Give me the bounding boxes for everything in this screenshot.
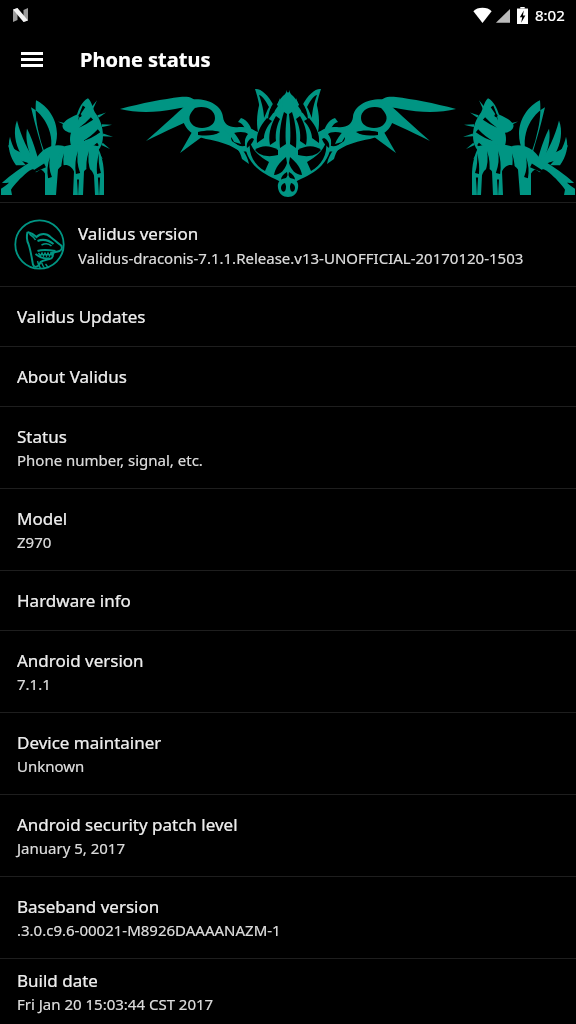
staticText: About Validus <box>17 365 127 388</box>
staticText: Fri Jan 20 15:03:44 CST 2017 <box>17 994 214 1014</box>
button[interactable]: Open navigation drawer <box>7 34 57 84</box>
button[interactable]: Status <box>0 407 576 488</box>
staticText: Z970 <box>17 532 52 552</box>
staticText: Validus Updates <box>17 305 146 328</box>
staticText: Phone status <box>80 46 211 73</box>
staticText: 7.1.1 <box>17 674 51 694</box>
staticText: Validus-draconis-7.1.1.Release.v13-UNOFF… <box>78 248 524 268</box>
button[interactable]: Baseband version <box>0 877 576 958</box>
staticText: January 5, 2017 <box>17 838 126 858</box>
staticText: Hardware info <box>17 589 131 612</box>
button[interactable]: Android security patch level <box>0 795 576 876</box>
staticText: 8:02 <box>535 5 565 25</box>
button[interactable]: Validus Updates <box>0 287 576 346</box>
staticText: Device maintainer <box>17 731 162 754</box>
button[interactable]: Validus version <box>0 203 576 286</box>
staticText: Validus version <box>78 222 199 245</box>
button[interactable]: Model <box>0 489 576 570</box>
staticText: Android version <box>17 649 144 672</box>
staticText: Baseband version <box>17 895 160 918</box>
button[interactable]: Device maintainer <box>0 713 576 794</box>
staticText: Build date <box>17 969 98 992</box>
button[interactable]: Android version <box>0 631 576 712</box>
staticText: Status <box>17 425 67 448</box>
button[interactable]: About Validus <box>0 347 576 406</box>
staticText: .3.0.c9.6-00021-M8926DAAAANAZM-1 <box>17 920 281 940</box>
staticText: Unknown <box>17 756 85 776</box>
staticText: Android security patch level <box>17 813 238 836</box>
button[interactable]: Hardware info <box>0 571 576 630</box>
button[interactable]: Build date <box>0 959 576 1024</box>
staticText: Model <box>17 507 68 530</box>
staticText: Phone number, signal, etc. <box>17 450 203 470</box>
